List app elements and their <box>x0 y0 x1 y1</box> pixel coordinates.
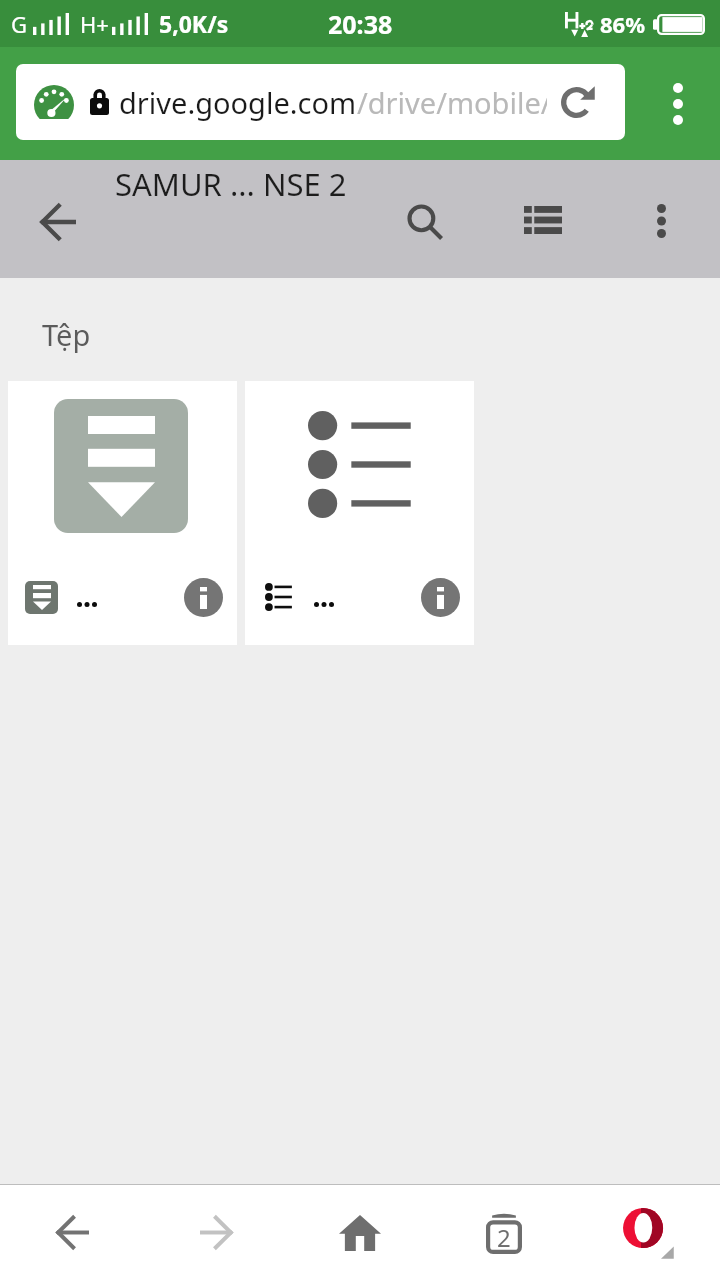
button[interactable]: Info <box>8 381 237 645</box>
button[interactable]: Info <box>245 381 474 645</box>
staticText: drive.google.com <box>119 83 357 122</box>
staticText: SAMUR ... NSE 2 <box>115 163 347 205</box>
button[interactable]: Reload <box>547 71 609 133</box>
staticText: 5,0K/s <box>159 8 229 39</box>
button[interactable]: Home <box>288 1185 432 1280</box>
button[interactable]: Back <box>0 1185 144 1280</box>
button[interactable]: Tabs <box>432 1185 576 1280</box>
staticText: 2 <box>497 1221 511 1254</box>
button[interactable]: Opera menu <box>576 1185 720 1280</box>
staticText: G <box>11 9 28 39</box>
button[interactable]: Info <box>421 578 460 617</box>
button[interactable]: Forward <box>144 1185 288 1280</box>
button[interactable]: Back <box>22 186 94 258</box>
button[interactable]: List view <box>507 184 579 256</box>
staticText: H+ <box>80 9 109 39</box>
button[interactable]: More options <box>633 193 689 249</box>
staticText: /drive/mobile/ <box>357 83 547 122</box>
staticText: 20:38 <box>328 7 393 41</box>
button[interactable]: Search <box>389 186 461 258</box>
staticText: 86% <box>600 9 646 39</box>
button[interactable]: Info <box>184 578 223 617</box>
button[interactable]: More options <box>650 76 706 132</box>
staticText: Tệp <box>42 315 91 354</box>
button[interactable]: drive.google.com <box>16 64 625 140</box>
